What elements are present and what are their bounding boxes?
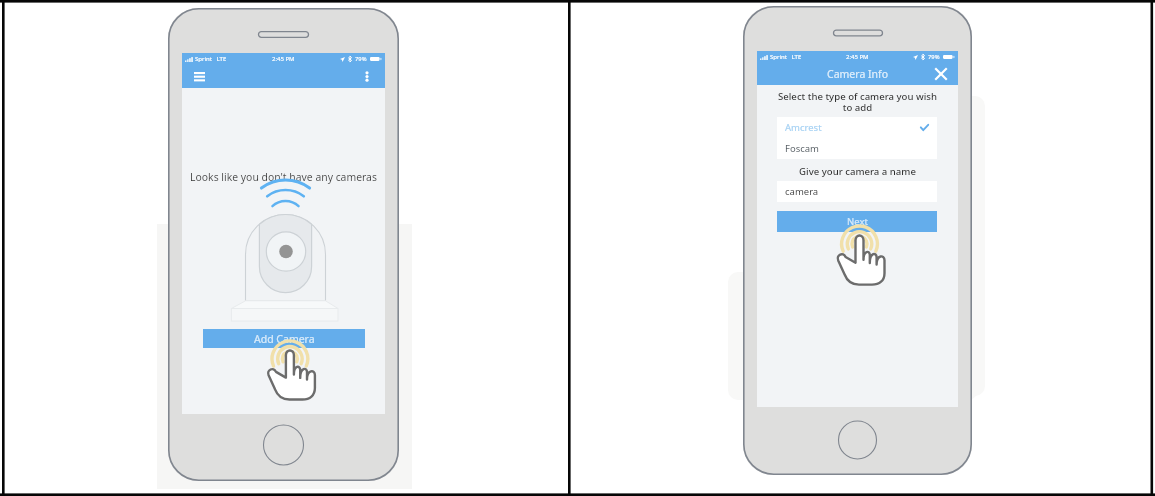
staticText: Sprint LTE: [195, 55, 227, 63]
staticText: 2:45 PM: [272, 55, 295, 63]
staticText: Sprint LTE: [770, 53, 802, 61]
staticText: 79%: [355, 55, 367, 63]
staticText: Add Camera: [254, 332, 315, 346]
staticText: 79%: [928, 53, 940, 61]
staticText: Amcrest: [785, 121, 822, 134]
button[interactable]: Amcrest: [777, 117, 937, 138]
staticText: Select the type of camera you wish to ad…: [757, 90, 958, 114]
staticText: 2:45 PM: [846, 53, 869, 61]
staticText: Foscam: [785, 142, 820, 155]
button[interactable]: Open navigation menu: [190, 67, 208, 85]
button[interactable]: Next: [777, 211, 937, 232]
staticText: Looks like you don't have any cameras: [182, 170, 385, 184]
staticText: Camera Info: [827, 67, 889, 81]
button[interactable]: Close: [933, 66, 949, 82]
staticText: Next: [847, 215, 868, 228]
button[interactable]: More options: [360, 68, 374, 84]
button[interactable]: camera: [777, 181, 937, 202]
button[interactable]: Add Camera: [203, 329, 365, 348]
staticText: camera: [785, 185, 819, 198]
staticText: Give your camera a name: [757, 165, 958, 178]
button[interactable]: Foscam: [777, 138, 937, 159]
